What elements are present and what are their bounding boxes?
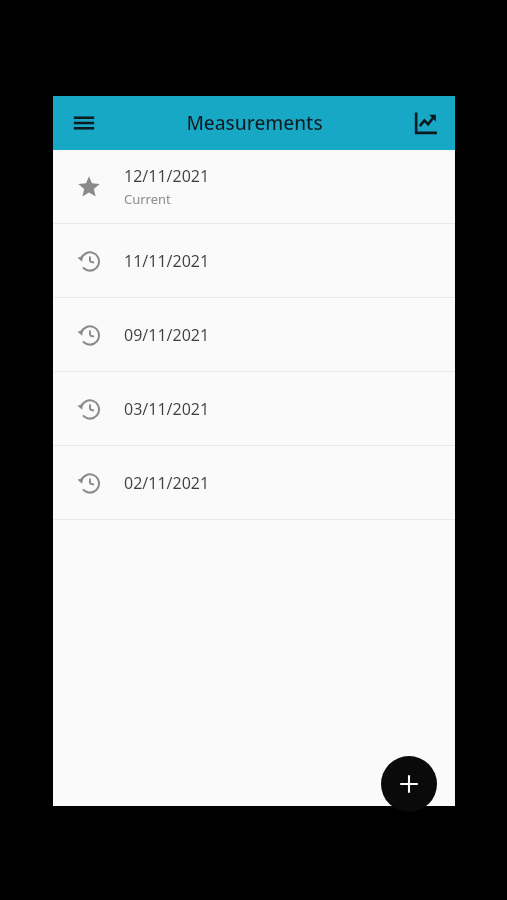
- button[interactable]: 03/11/2021: [53, 372, 455, 445]
- staticText: 11/11/2021: [124, 250, 210, 272]
- staticText: 09/11/2021: [124, 324, 210, 346]
- button[interactable]: Open navigation menu: [62, 101, 106, 145]
- staticText: Current: [124, 190, 171, 208]
- staticText: Measurements: [186, 110, 323, 136]
- button[interactable]: 02/11/2021: [53, 446, 455, 519]
- staticText: 03/11/2021: [124, 398, 210, 420]
- button[interactable]: 11/11/2021: [53, 224, 455, 297]
- button[interactable]: Show chart: [404, 101, 448, 145]
- staticText: 02/11/2021: [124, 472, 210, 494]
- button[interactable]: Add measurement: [381, 756, 437, 812]
- button[interactable]: 12/11/2021: [53, 150, 455, 223]
- button[interactable]: 09/11/2021: [53, 298, 455, 371]
- staticText: 12/11/2021: [124, 165, 210, 187]
